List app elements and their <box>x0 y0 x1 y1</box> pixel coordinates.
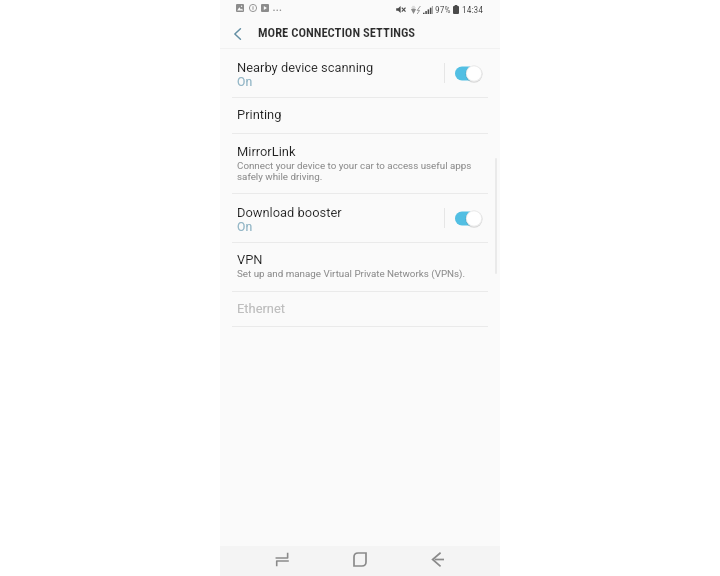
staticText: Nearby device scanning <box>237 60 374 75</box>
button[interactable]: Toggle <box>455 210 482 227</box>
button[interactable]: Recent apps <box>264 546 300 572</box>
button[interactable]: Back <box>420 546 456 572</box>
staticText: On <box>237 75 253 89</box>
button[interactable]: Toggle <box>455 65 482 82</box>
button[interactable]: Nearby device scanning <box>220 49 500 97</box>
staticText: MirrorLink <box>237 144 296 159</box>
staticText: Set up and manage Virtual Private Networ… <box>237 268 466 279</box>
staticText: VPN <box>237 252 263 267</box>
staticText: Connect your device to your car to acces… <box>237 160 472 182</box>
staticText: Printing <box>237 107 282 122</box>
button[interactable]: Ethernet <box>220 292 500 326</box>
button[interactable]: Download booster <box>220 194 500 242</box>
staticText: MORE CONNECTION SETTINGS <box>258 25 416 40</box>
button[interactable]: VPN <box>220 243 500 291</box>
staticText: Download booster <box>237 205 342 220</box>
staticText: 97% <box>435 4 451 15</box>
staticText: On <box>237 220 253 234</box>
button[interactable]: Printing <box>220 98 500 133</box>
button[interactable]: MirrorLink <box>220 134 500 193</box>
staticText: Ethernet <box>237 301 286 316</box>
button[interactable]: Navigate up <box>224 22 250 46</box>
button[interactable]: Home <box>342 546 378 572</box>
staticText: 14:34 <box>462 4 483 15</box>
